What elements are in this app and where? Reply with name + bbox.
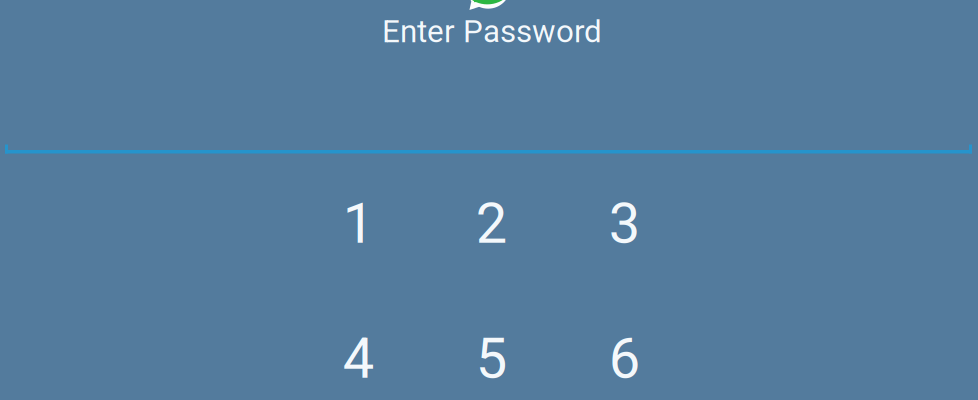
staticText: 1 bbox=[343, 191, 374, 256]
staticText: 6 bbox=[609, 326, 640, 391]
button[interactable]: 3 bbox=[558, 163, 691, 283]
staticText: 5 bbox=[476, 326, 507, 391]
staticText: 3 bbox=[609, 191, 640, 256]
button[interactable]: 1 bbox=[292, 163, 425, 283]
button[interactable]: 5 bbox=[425, 298, 558, 400]
staticText: 4 bbox=[343, 326, 374, 391]
button[interactable]: 6 bbox=[558, 298, 691, 400]
staticText: Enter Password bbox=[382, 13, 602, 50]
button[interactable]: Password bbox=[5, 144, 972, 153]
button[interactable]: 4 bbox=[292, 298, 425, 400]
button[interactable]: 2 bbox=[425, 163, 558, 283]
staticText: 2 bbox=[476, 191, 507, 256]
